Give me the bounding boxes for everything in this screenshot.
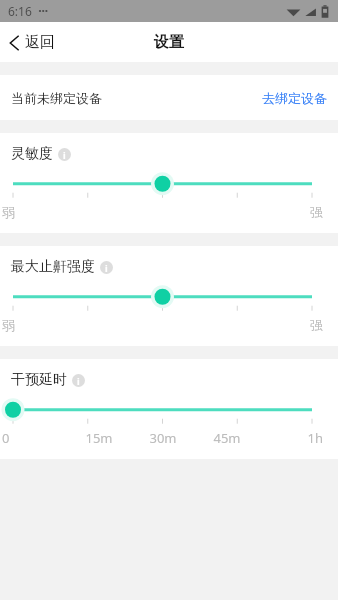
staticText: 去绑定设备 — [262, 90, 327, 106]
staticText: 干预延时 — [11, 371, 67, 389]
staticText: 返回 — [25, 33, 55, 52]
button[interactable]: 说明 — [58, 148, 71, 161]
staticText: 30m — [131, 429, 195, 447]
staticText: 45m — [195, 429, 259, 447]
staticText: 15m — [67, 429, 131, 447]
staticText: 6:16 — [8, 3, 32, 19]
staticText: 强 — [259, 204, 323, 220]
button[interactable]: 说明 — [72, 374, 85, 387]
staticText: 当前未绑定设备 — [11, 90, 102, 106]
button[interactable]: 滑块 — [0, 169, 338, 201]
staticText: 0 — [2, 429, 67, 447]
button[interactable]: 返回 — [0, 27, 67, 58]
button[interactable]: 滑块 — [0, 282, 338, 314]
staticText: 1h — [259, 429, 323, 447]
staticText: 灵敏度 — [11, 145, 53, 163]
staticText: 设置 — [154, 33, 184, 52]
staticText: i — [77, 375, 80, 387]
staticText: 最大止鼾强度 — [11, 258, 95, 276]
staticText: 弱 — [2, 204, 67, 220]
staticText: i — [63, 149, 66, 161]
staticText: 弱 — [2, 317, 67, 333]
button[interactable]: 滑块 — [0, 395, 338, 427]
button[interactable]: 去绑定设备 — [251, 82, 338, 114]
button[interactable]: 说明 — [100, 261, 113, 274]
staticText: 强 — [259, 317, 323, 333]
staticText: i — [105, 262, 108, 274]
